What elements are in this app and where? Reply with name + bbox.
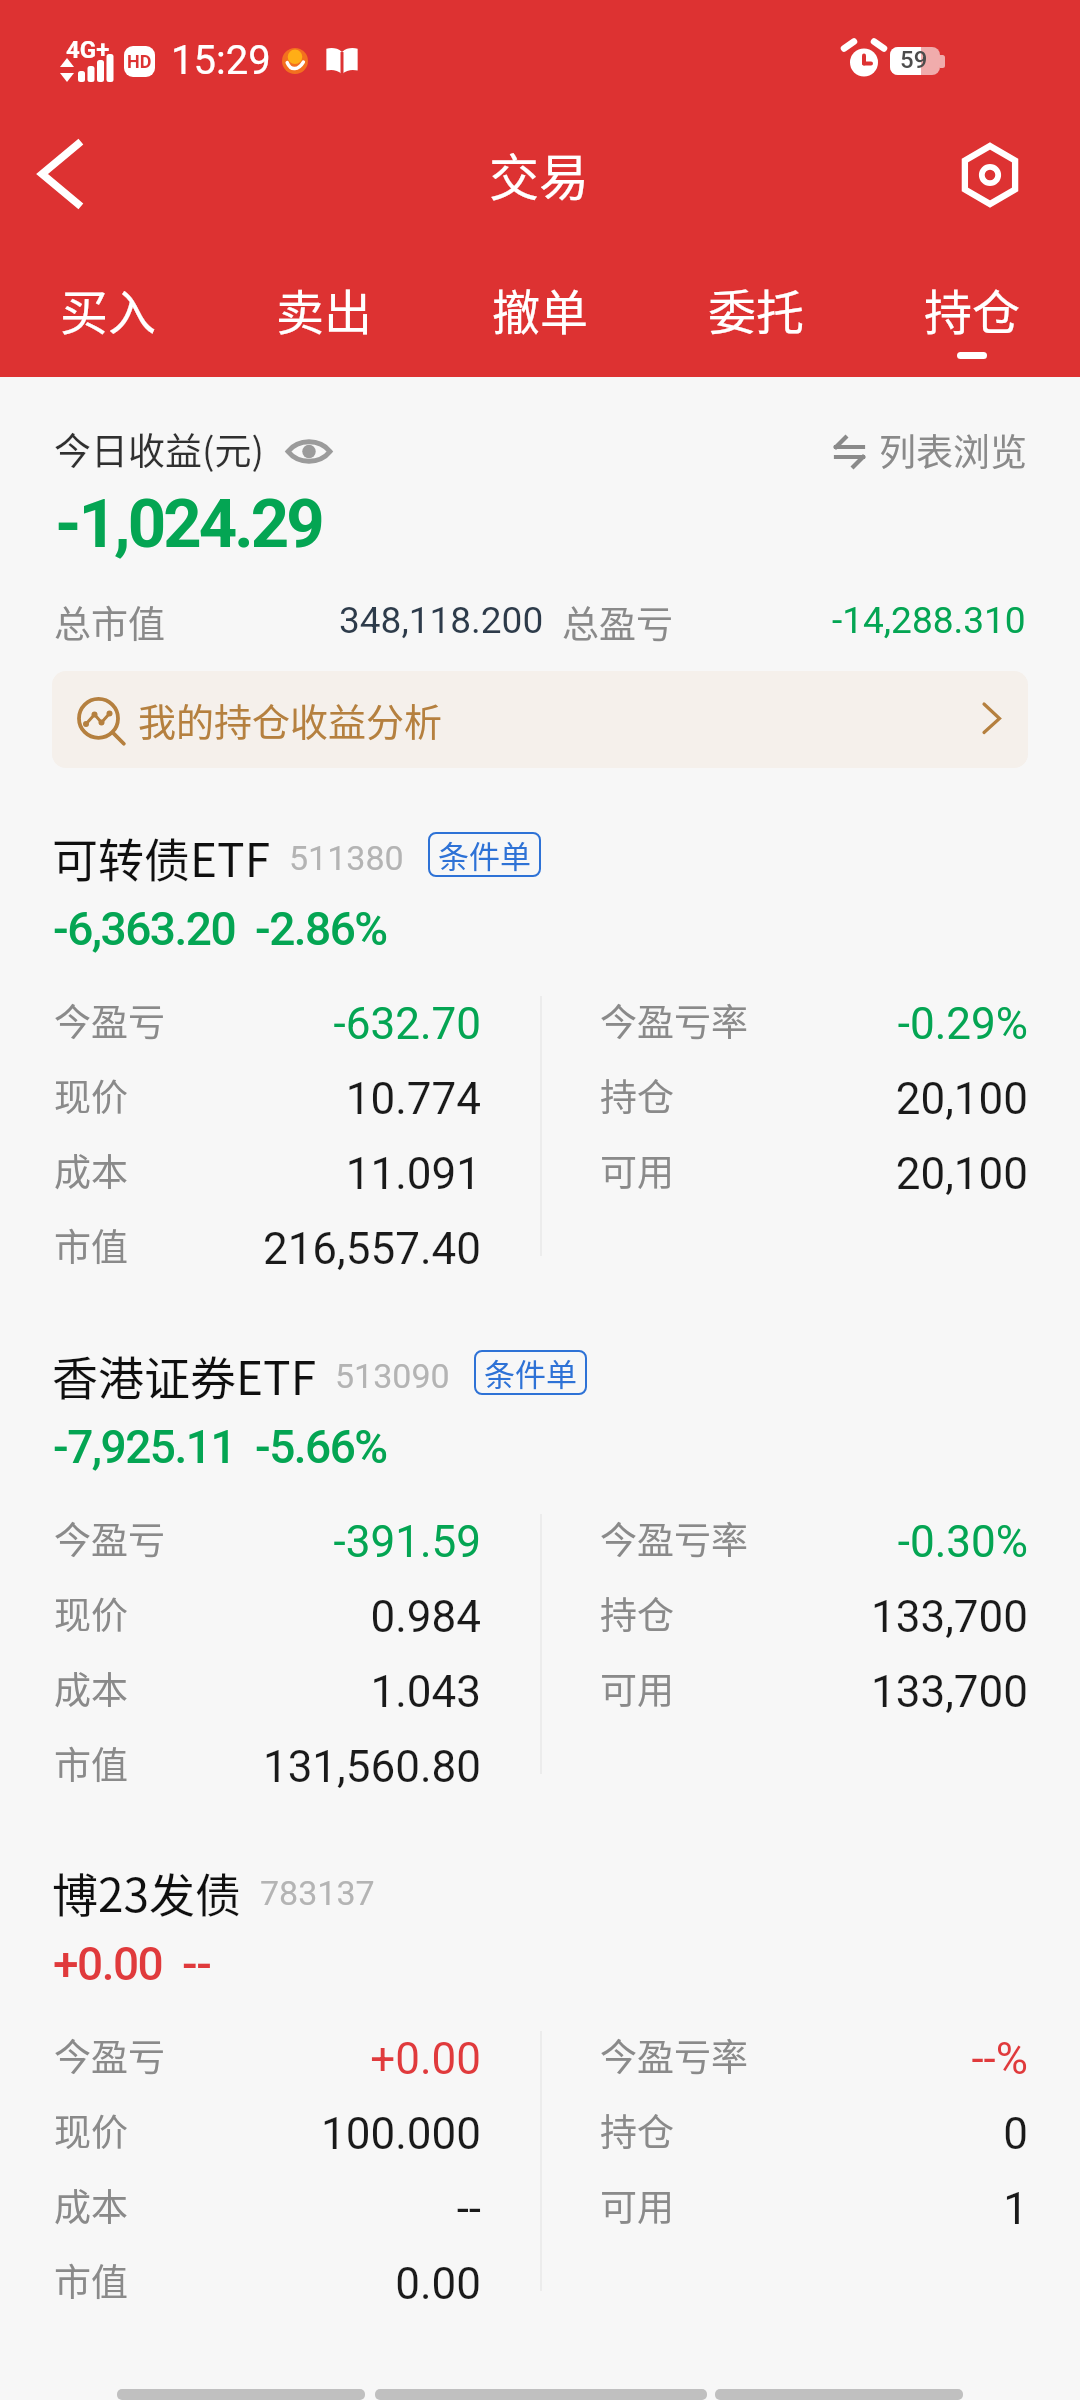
staticText: -6,363.20 — [53, 902, 236, 956]
staticText: 香港证券ETF — [52, 1342, 317, 1400]
staticText: 今盈亏 — [54, 2028, 165, 2082]
staticText: 348,118.200 — [339, 599, 544, 642]
staticText: 条件单 — [438, 832, 531, 877]
button[interactable]: 成本 — [54, 1132, 481, 1207]
staticText: 10.774 — [345, 1073, 481, 1125]
staticText: 今盈亏率 — [600, 2028, 748, 2082]
staticText: 59 — [900, 46, 928, 74]
button[interactable]: Settings — [945, 130, 1035, 220]
staticText: -- — [182, 1937, 211, 1991]
staticText: 今盈亏 — [54, 1511, 165, 1565]
staticText: 持仓 — [600, 1068, 674, 1122]
button[interactable]: 持仓 — [600, 1575, 1028, 1650]
staticText: -0.30% — [897, 1516, 1028, 1568]
staticText: +0.00 — [53, 1937, 163, 1991]
staticText: 现价 — [54, 1586, 128, 1640]
staticText: 总市值 — [54, 595, 165, 649]
staticText: 可用 — [600, 2178, 674, 2232]
button[interactable]: 条件单 — [484, 1350, 577, 1395]
button[interactable]: 可用 — [600, 2167, 1028, 2242]
staticText: 委托 — [708, 274, 805, 344]
staticText: 总盈亏 — [562, 595, 673, 649]
staticText: 买入 — [60, 274, 157, 344]
staticText: 市值 — [54, 2253, 128, 2307]
staticText: 持仓 — [924, 274, 1021, 344]
button[interactable]: 持仓 — [600, 2092, 1028, 2167]
button[interactable]: 今盈亏 — [54, 2017, 481, 2092]
staticText: 0.00 — [395, 2258, 481, 2310]
staticText: 市值 — [54, 1218, 128, 1272]
staticText: 可转债ETF — [52, 824, 271, 882]
button[interactable]: 条件单 — [438, 832, 531, 877]
button[interactable]: 市值 — [54, 1725, 481, 1800]
button[interactable]: Hide amount — [287, 438, 331, 465]
staticText: 列表浏览 — [879, 423, 1027, 477]
staticText: HD — [127, 51, 152, 72]
staticText: 条件单 — [484, 1350, 577, 1395]
button[interactable]: 买入 — [0, 230, 216, 377]
button[interactable]: Back — [6, 124, 114, 226]
staticText: 博23发债 — [52, 1859, 242, 1917]
button[interactable]: 市值 — [54, 2242, 481, 2317]
staticText: 216,557.40 — [262, 1223, 481, 1275]
button[interactable]: 成本 — [54, 1650, 481, 1725]
staticText: 0 — [1003, 2108, 1028, 2160]
staticText: -0.29% — [897, 998, 1028, 1050]
staticText: 成本 — [54, 2178, 128, 2232]
staticText: 511380 — [289, 838, 404, 878]
button[interactable]: 今盈亏率 — [600, 982, 1028, 1057]
staticText: 今盈亏 — [54, 993, 165, 1047]
button[interactable]: 我的持仓收益分析 — [52, 671, 1028, 768]
staticText: 现价 — [54, 2103, 128, 2157]
staticText: -391.59 — [333, 1516, 481, 1568]
staticText: 1 — [1003, 2183, 1028, 2235]
staticText: 15:29 — [171, 37, 271, 84]
staticText: 撤单 — [492, 274, 589, 344]
button[interactable]: 持仓 — [864, 230, 1080, 377]
staticText: 成本 — [54, 1661, 128, 1715]
staticText: 20,100 — [895, 1148, 1028, 1200]
staticText: 持仓 — [600, 2103, 674, 2157]
staticText: 783137 — [260, 1873, 375, 1913]
staticText: 市值 — [54, 1736, 128, 1790]
staticText: -5.66% — [255, 1420, 387, 1474]
staticText: 现价 — [54, 1068, 128, 1122]
button[interactable]: 成本 — [54, 2167, 481, 2242]
button[interactable]: 今盈亏 — [54, 982, 481, 1057]
button[interactable]: 可用 — [600, 1650, 1028, 1725]
staticText: 今盈亏率 — [600, 1511, 748, 1565]
staticText: -1,024.29 — [55, 485, 322, 564]
button[interactable]: 持仓 — [600, 1057, 1028, 1132]
staticText: -7,925.11 — [53, 1420, 236, 1474]
staticText: 今盈亏率 — [600, 993, 748, 1047]
button[interactable]: 今盈亏 — [54, 1500, 481, 1575]
staticText: -- — [456, 2183, 481, 2235]
staticText: 0.984 — [370, 1591, 481, 1643]
button[interactable]: 市值 — [54, 1207, 481, 1282]
button[interactable]: 现价 — [54, 2092, 481, 2167]
button[interactable]: 卖出 — [216, 230, 432, 377]
button[interactable]: 现价 — [54, 1057, 481, 1132]
staticText: 卖出 — [276, 274, 373, 344]
button[interactable]: 可用 — [600, 1132, 1028, 1207]
staticText: 11.091 — [345, 1148, 481, 1200]
button[interactable]: 今盈亏率 — [600, 1500, 1028, 1575]
staticText: 可用 — [600, 1143, 674, 1197]
button[interactable]: 委托 — [648, 230, 864, 377]
staticText: 133,700 — [870, 1666, 1028, 1718]
staticText: 交易 — [489, 138, 589, 210]
staticText: 1.043 — [370, 1666, 481, 1718]
staticText: 成本 — [54, 1143, 128, 1197]
staticText: -632.70 — [333, 998, 481, 1050]
staticText: 我的持仓收益分析 — [138, 692, 443, 747]
staticText: 持仓 — [600, 1586, 674, 1640]
staticText: 可用 — [600, 1661, 674, 1715]
staticText: 4G+ — [66, 36, 110, 64]
button[interactable]: 列表浏览 — [824, 424, 1040, 484]
staticText: 513090 — [335, 1356, 450, 1396]
button[interactable]: 撤单 — [432, 230, 648, 377]
staticText: -14,288.310 — [832, 599, 1026, 642]
button[interactable]: 今盈亏率 — [600, 2017, 1028, 2092]
button[interactable]: 现价 — [54, 1575, 481, 1650]
staticText: 今日收益(元) — [54, 422, 265, 476]
